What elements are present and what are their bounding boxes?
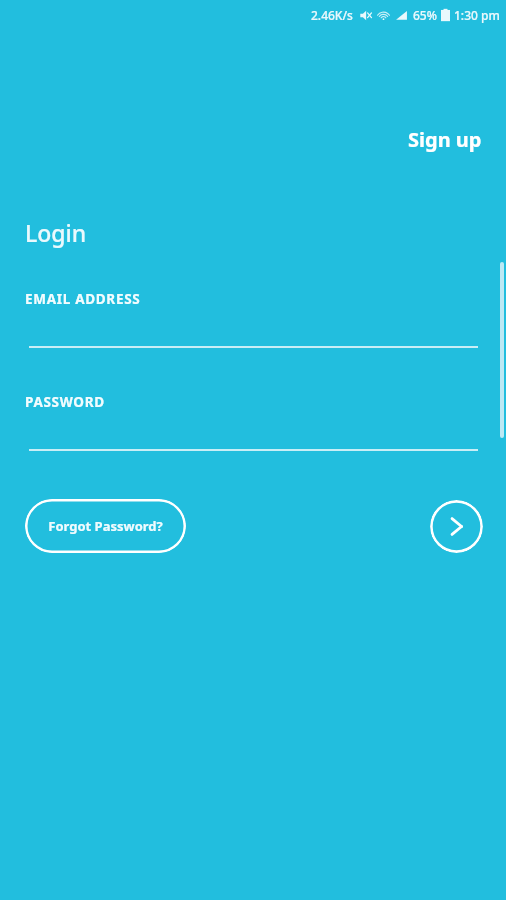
staticText: Login xyxy=(25,217,87,248)
button[interactable]: Continue xyxy=(430,500,483,553)
staticText: EMAIL ADDRESS xyxy=(25,290,141,308)
staticText: 1:30 pm xyxy=(454,7,500,23)
staticText: Sign up xyxy=(408,126,482,153)
staticText: Forgot Password? xyxy=(48,517,163,535)
staticText: PASSWORD xyxy=(25,393,105,411)
staticText: 65% xyxy=(413,7,437,23)
button[interactable]: Sign up xyxy=(384,122,506,157)
button[interactable]: Forgot Password? xyxy=(25,499,186,553)
staticText: 2.46K/s xyxy=(311,7,353,23)
